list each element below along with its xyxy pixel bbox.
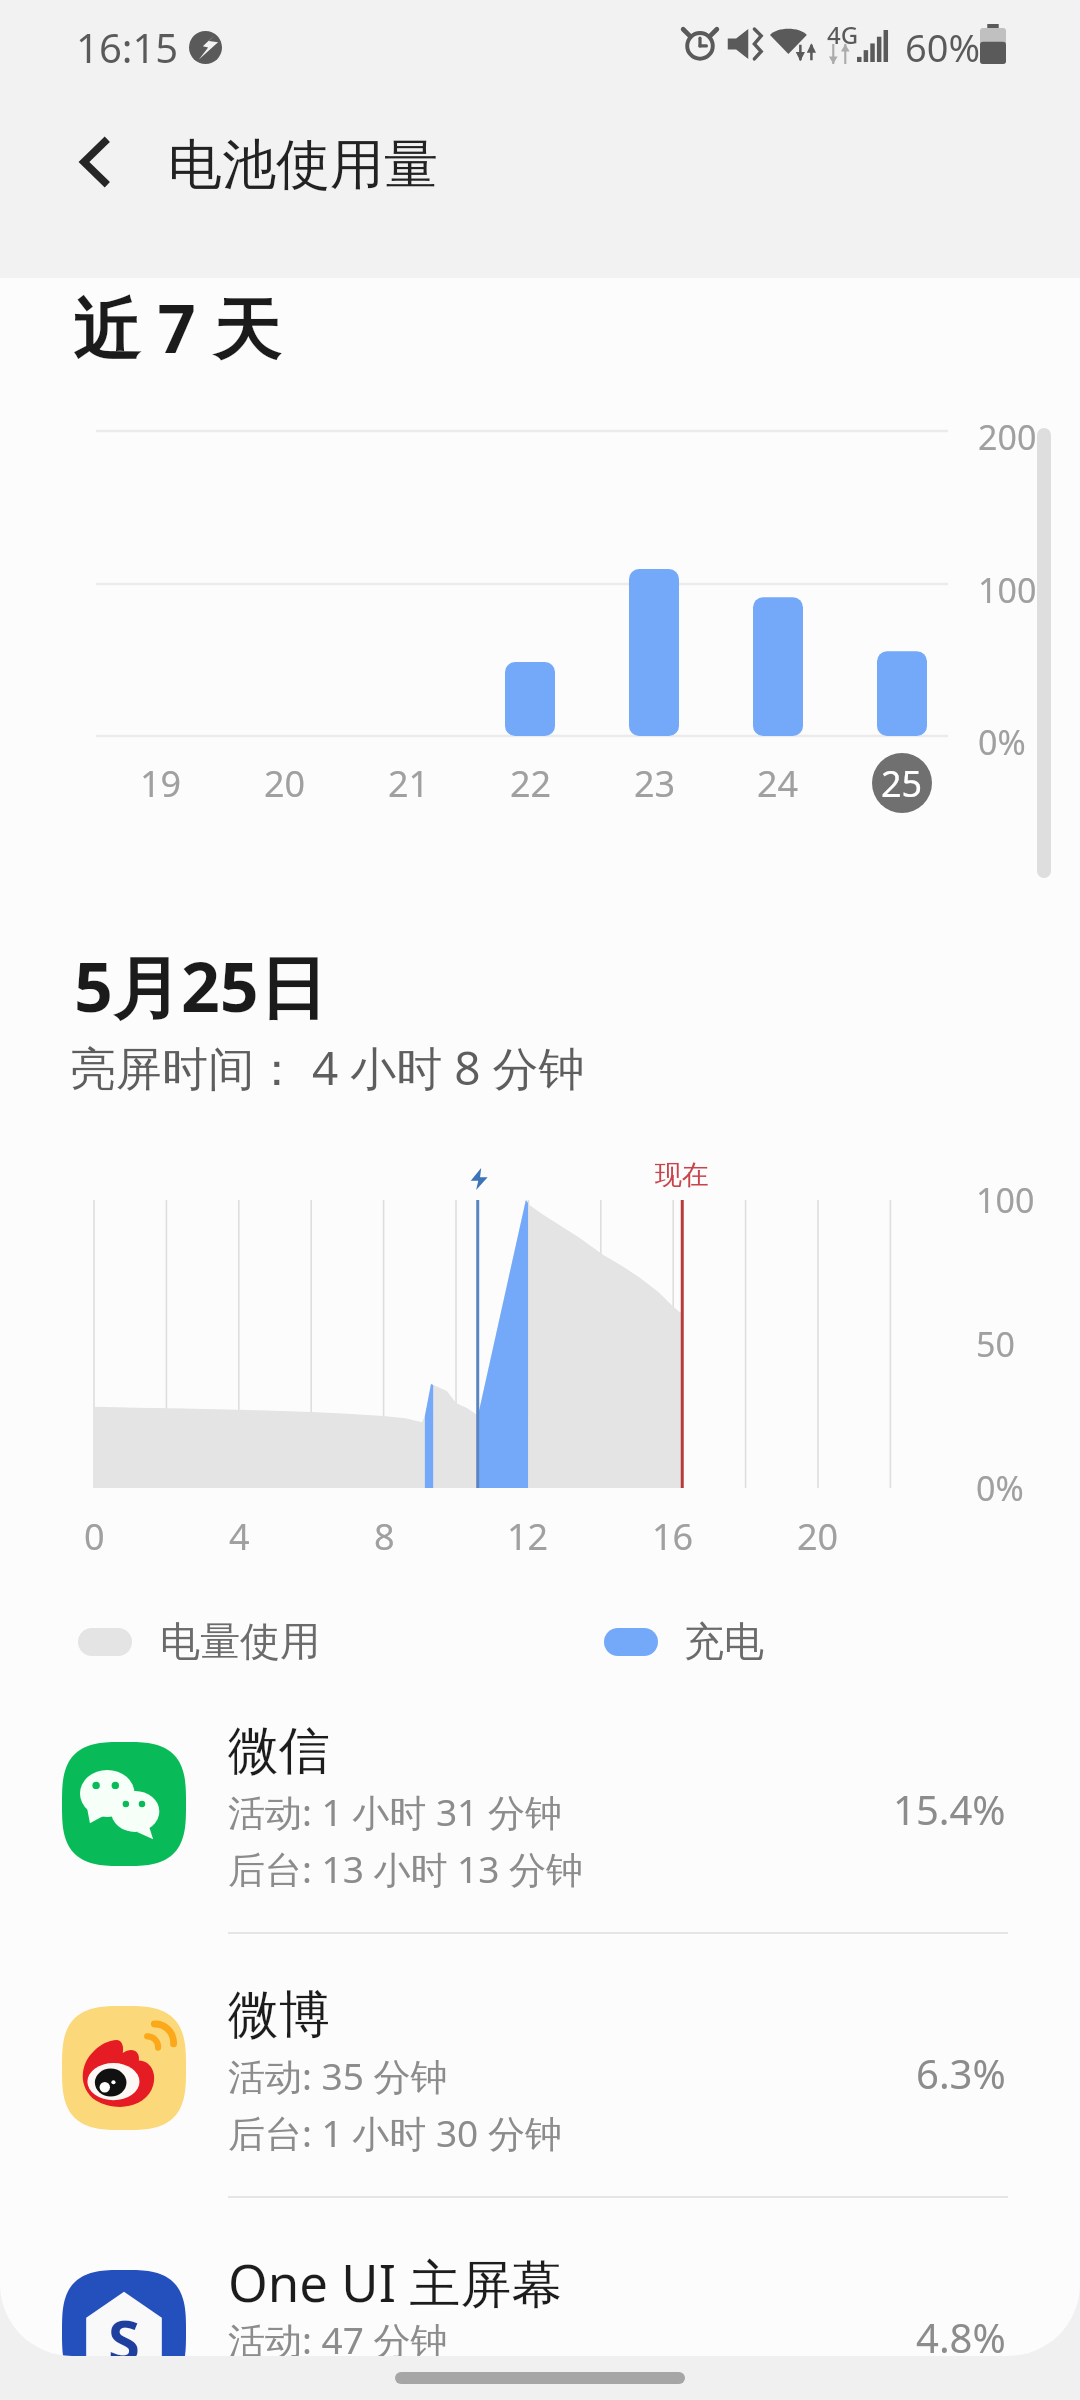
staticText: 25 (881, 759, 923, 808)
staticText: 15.4% (893, 1782, 1006, 1836)
staticText: 23 (634, 759, 676, 808)
staticText: 后台: 1 小时 30 分钟 (228, 2107, 562, 2158)
button[interactable]: 微信 (0, 1656, 1080, 1920)
button[interactable]: 25 (862, 421, 942, 813)
staticText: 现在 (655, 1158, 709, 1192)
staticText: 200 (978, 414, 1037, 460)
staticText: 21 (388, 759, 430, 808)
staticText: 电量使用 (160, 1616, 320, 1666)
staticText: 12 (507, 1512, 549, 1561)
staticText: One UI 主屏幕 (228, 2247, 563, 2317)
button[interactable]: 微博 (0, 1920, 1080, 2184)
staticText: 0% (976, 1465, 1024, 1511)
button[interactable]: 21 (369, 421, 449, 813)
button[interactable]: 22 (491, 421, 571, 813)
staticText: 100 (978, 567, 1037, 613)
staticText: 4 (229, 1512, 250, 1561)
staticText: 6.3% (916, 2046, 1006, 2100)
staticText: 24 (757, 759, 799, 808)
staticText: 20 (797, 1512, 839, 1561)
staticText: 后台: 13 小时 13 分钟 (228, 1843, 584, 1894)
staticText: 4.8% (916, 2310, 1006, 2356)
staticText: 60% (905, 21, 981, 73)
staticText: 电池使用量 (168, 131, 438, 199)
staticText: 活动: 1 小时 31 分钟 (228, 1786, 562, 1837)
staticText: 亮屏时间： 4 小时 8 分钟 (70, 1036, 585, 1099)
staticText: 50 (976, 1321, 1015, 1367)
button[interactable]: 23 (615, 421, 695, 813)
staticText: 20 (264, 759, 306, 808)
staticText: 近 7 天 (73, 281, 281, 373)
staticText: 22 (510, 759, 552, 808)
button[interactable]: 24 (738, 421, 818, 813)
staticText: 100 (976, 1177, 1035, 1223)
staticText: 16:15 (76, 20, 179, 74)
staticText: 16 (652, 1512, 694, 1561)
staticText: 微博 (228, 1983, 330, 2047)
button[interactable]: 19 (121, 421, 201, 813)
staticText: 活动: 35 分钟 (228, 2050, 448, 2101)
staticText: S (108, 2300, 140, 2356)
staticText: 5月25日 (74, 939, 327, 1032)
button[interactable]: 20 (245, 421, 325, 813)
staticText: 0% (978, 719, 1026, 765)
staticText: 8 (374, 1512, 395, 1561)
staticText: 微信 (228, 1719, 330, 1783)
staticText: 活动: 47 分钟 (228, 2314, 448, 2356)
button[interactable]: Back (29, 97, 159, 227)
staticText: 4G (827, 18, 859, 51)
button[interactable]: S (0, 2184, 1080, 2356)
staticText: 充电 (684, 1616, 764, 1666)
staticText: 19 (140, 759, 182, 808)
staticText: 0 (84, 1512, 105, 1561)
